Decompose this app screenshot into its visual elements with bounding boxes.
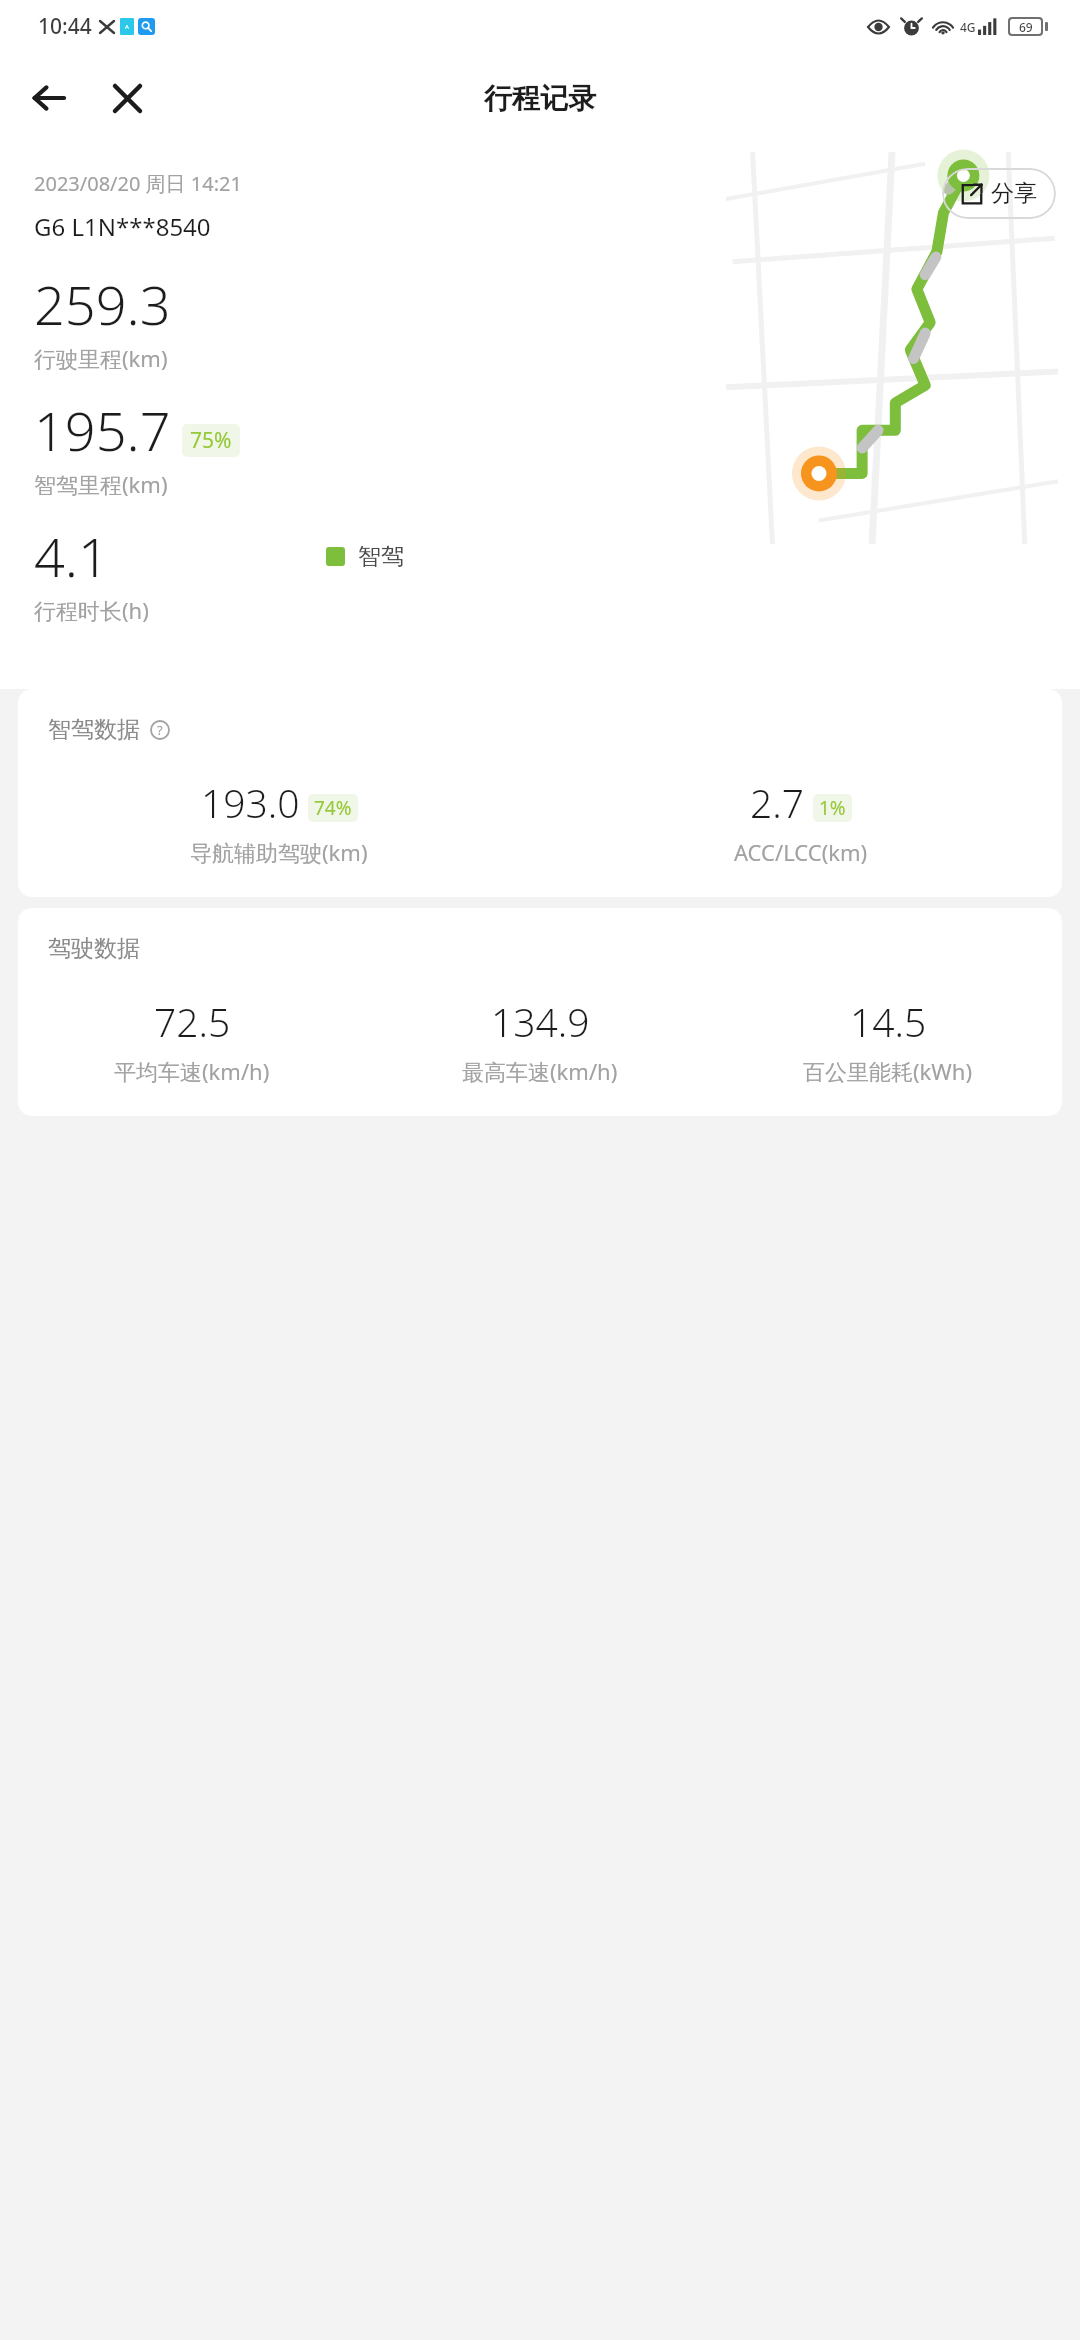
staticText: 1% bbox=[819, 795, 846, 821]
staticText: 2.7 bbox=[750, 776, 805, 829]
staticText: 195.7 bbox=[34, 393, 171, 467]
staticText: 193.0 bbox=[201, 776, 300, 829]
staticText: 行程时长(h) bbox=[34, 595, 149, 625]
staticText: 智驾 bbox=[358, 542, 404, 571]
staticText: 69 bbox=[1019, 19, 1033, 34]
staticText: 行程记录 bbox=[484, 81, 596, 116]
staticText: 72.5 bbox=[154, 995, 231, 1048]
staticText: 2023/08/20 周日 14:21 bbox=[34, 170, 242, 197]
staticText: 百公里能耗(kWh) bbox=[803, 1056, 973, 1086]
staticText: 行驶里程(km) bbox=[34, 343, 168, 373]
staticText: 259.3 bbox=[34, 267, 171, 341]
staticText: 智驾里程(km) bbox=[34, 469, 168, 499]
staticText: 134.9 bbox=[491, 995, 590, 1048]
staticText: 4G bbox=[960, 19, 976, 35]
staticText: 驾驶数据 bbox=[48, 934, 140, 963]
staticText: 平均车速(km/h) bbox=[114, 1056, 270, 1086]
staticText: 10:44 bbox=[38, 12, 92, 41]
button[interactable]: Back bbox=[18, 67, 80, 129]
staticText: A bbox=[125, 23, 129, 31]
button[interactable]: Close bbox=[96, 67, 158, 129]
staticText: 导航辅助驾驶(km) bbox=[190, 837, 368, 867]
staticText: 4.1 bbox=[34, 519, 109, 593]
staticText: 智驾数据 bbox=[48, 715, 140, 744]
staticText: 分享 bbox=[991, 179, 1037, 208]
staticText: ? bbox=[157, 721, 163, 739]
staticText: ACC/LCC(km) bbox=[734, 837, 868, 867]
staticText: 75% bbox=[190, 426, 232, 455]
staticText: G6 L1N***8540 bbox=[34, 210, 211, 243]
staticText: 74% bbox=[314, 795, 352, 821]
staticText: 最高车速(km/h) bbox=[462, 1056, 618, 1086]
button[interactable]: Info bbox=[147, 717, 173, 743]
staticText: 14.5 bbox=[850, 995, 927, 1048]
button[interactable]: 分享 bbox=[942, 168, 1056, 219]
